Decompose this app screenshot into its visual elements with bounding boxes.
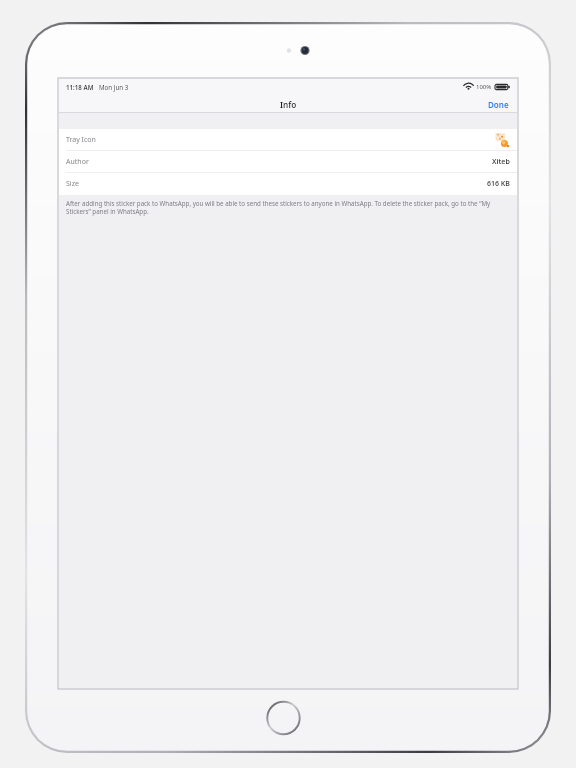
button[interactable]: Size [59, 173, 517, 195]
staticText: Tray Icon [66, 135, 96, 145]
button[interactable]: Tray Icon [59, 129, 517, 151]
other: Tray icon preview [495, 133, 510, 148]
staticText: 616 KB [487, 179, 510, 189]
staticText: Done [488, 99, 509, 110]
staticText: After adding this sticker pack to WhatsA… [66, 199, 503, 215]
staticText: Info [280, 99, 297, 110]
button[interactable]: Done [480, 96, 517, 113]
staticText: Mon Jun 3 [99, 83, 129, 91]
staticText: Xiteb [492, 157, 510, 167]
staticText: 11:18 AM [66, 83, 94, 91]
button[interactable]: Author [59, 151, 517, 173]
staticText: 100% [476, 83, 492, 91]
staticText: Size [66, 179, 79, 189]
staticText: Author [66, 157, 89, 167]
